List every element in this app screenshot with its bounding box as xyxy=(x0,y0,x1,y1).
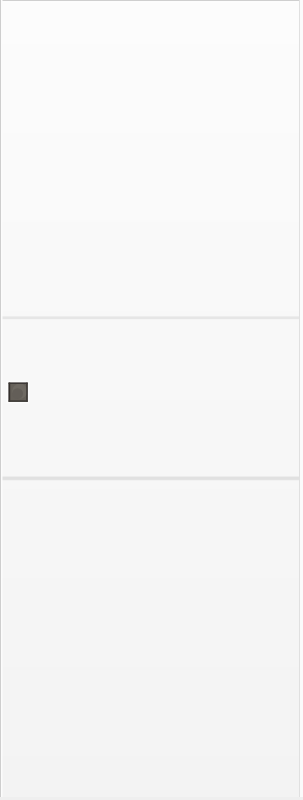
button[interactable]: Door handle xyxy=(6,380,30,404)
